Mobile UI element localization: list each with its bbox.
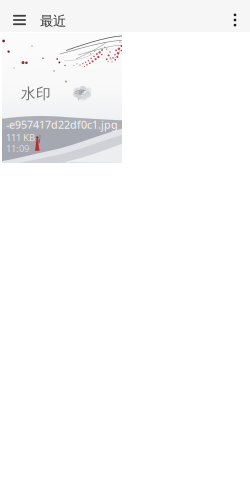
button[interactable]: Menu (6, 7, 33, 33)
staticText: 水印 (21, 84, 51, 102)
staticText: 11:09 (6, 142, 29, 155)
button[interactable]: More options (224, 9, 246, 31)
staticText: 最近 (40, 13, 66, 29)
staticText: -e957417d22df0c1.jpg (6, 117, 118, 132)
button[interactable]: 水印 (2, 33, 122, 163)
staticText: 111 KB (6, 131, 35, 144)
